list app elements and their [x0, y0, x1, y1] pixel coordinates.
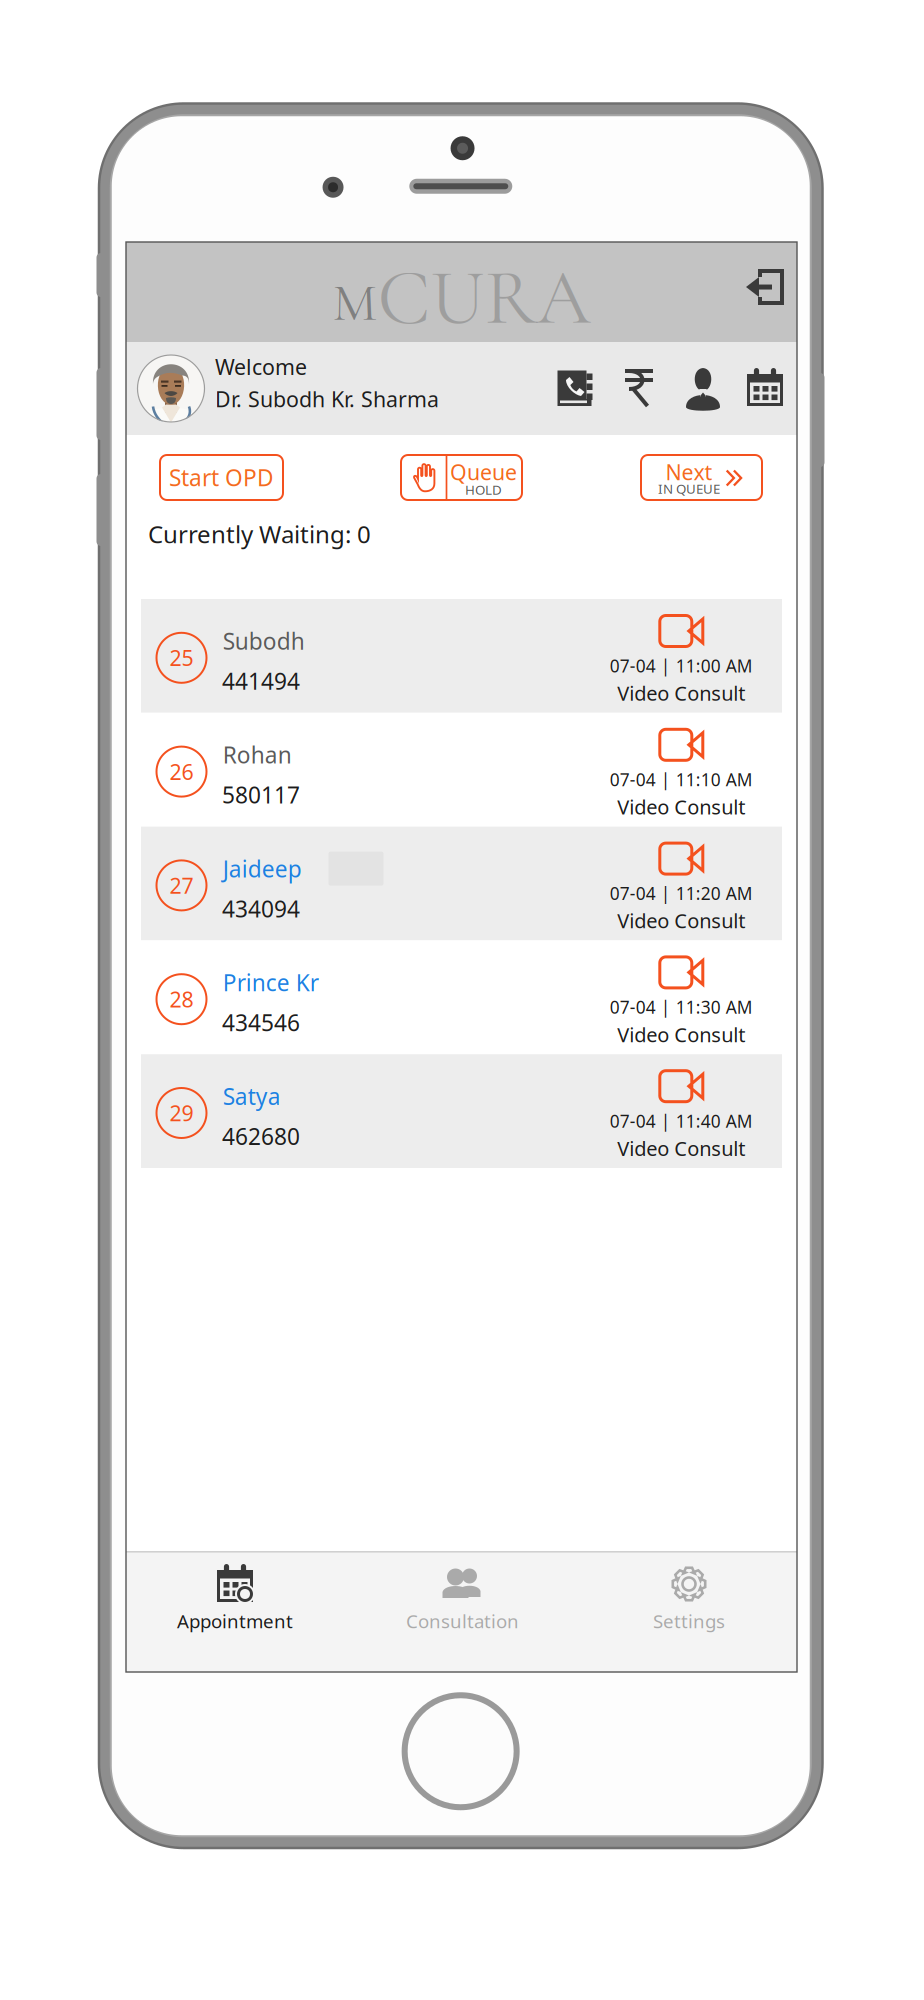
staticText: Video Consult: [617, 1135, 745, 1161]
staticText: Start OPD: [169, 462, 274, 492]
staticText: CURA: [377, 251, 590, 345]
staticText: 29: [169, 1099, 193, 1127]
staticText: Video Consult: [617, 907, 745, 934]
button[interactable]: Consultation: [353, 1551, 571, 1672]
button[interactable]: Next: [641, 455, 762, 500]
staticText: 580117: [222, 780, 300, 810]
staticText: 462680: [222, 1121, 300, 1151]
staticText: Video Consult: [617, 680, 745, 706]
button[interactable]: 25: [141, 599, 782, 713]
button[interactable]: 27: [141, 827, 782, 940]
button[interactable]: Log out: [738, 259, 794, 315]
staticText: Subodh: [223, 626, 305, 656]
staticText: Consultation: [406, 1609, 519, 1633]
button[interactable]: Queue: [401, 455, 522, 500]
staticText: Jaideep: [223, 853, 302, 884]
staticText: 25: [169, 644, 193, 672]
staticText: Dr. Subodh Kr. Sharma: [215, 385, 439, 413]
staticText: 07-04 | 11:00 AM: [610, 654, 753, 677]
button[interactable]: Appointment: [126, 1551, 344, 1672]
staticText: Prince Kr: [223, 967, 319, 997]
staticText: 28: [169, 985, 193, 1013]
staticText: HOLD: [465, 481, 502, 498]
staticText: Rohan: [223, 740, 292, 770]
staticText: Video Consult: [617, 793, 745, 820]
button[interactable]: 26: [141, 713, 782, 827]
staticText: 07-04 | 11:30 AM: [610, 996, 753, 1019]
staticText: M: [332, 270, 377, 335]
staticText: Settings: [653, 1609, 725, 1633]
button[interactable]: Calendar: [746, 368, 784, 408]
staticText: Queue: [450, 458, 517, 486]
staticText: Currently Waiting: 0: [148, 518, 371, 550]
button[interactable]: Contacts: [557, 369, 593, 407]
button[interactable]: 29: [141, 1054, 782, 1168]
staticText: 434546: [222, 1007, 300, 1037]
staticText: 441494: [222, 666, 300, 696]
staticText: IN QUEUE: [658, 480, 720, 497]
staticText: Appointment: [177, 1609, 293, 1633]
button[interactable]: Start OPD: [160, 455, 283, 500]
staticText: 27: [169, 871, 193, 899]
button[interactable]: 28: [141, 940, 782, 1054]
staticText: Next: [665, 458, 712, 486]
button[interactable]: Settings: [580, 1551, 798, 1672]
button[interactable]: Profile: [686, 368, 720, 408]
staticText: 07-04 | 11:20 AM: [610, 882, 753, 905]
button[interactable]: Payments: [624, 368, 654, 408]
staticText: 07-04 | 11:40 AM: [610, 1109, 753, 1132]
staticText: Satya: [223, 1081, 281, 1111]
staticText: 07-04 | 11:10 AM: [610, 768, 753, 791]
staticText: Welcome: [215, 352, 307, 381]
staticText: 434094: [222, 893, 300, 924]
staticText: 26: [169, 757, 193, 786]
staticText: Video Consult: [617, 1021, 745, 1048]
